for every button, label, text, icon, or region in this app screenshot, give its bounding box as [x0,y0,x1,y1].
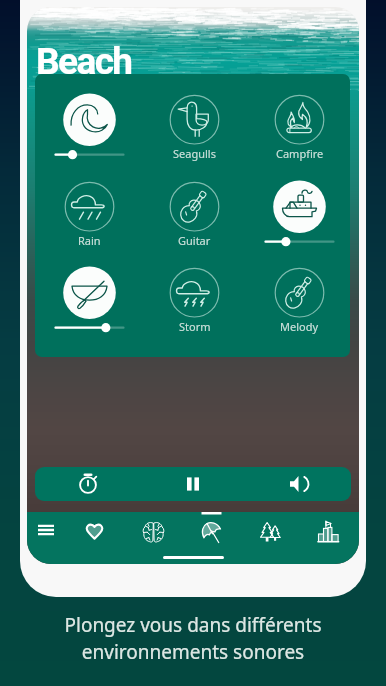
button[interactable]: Guitar [142,161,247,247]
staticText: Beach [36,40,132,83]
staticText: Guitar [178,233,211,248]
button[interactable] [37,247,142,333]
staticText: Rain [78,233,101,248]
button[interactable]: Volume [246,467,351,501]
button[interactable]: Rain [37,161,142,247]
button[interactable]: Forest [241,512,300,548]
button[interactable]: Campfire [247,74,350,160]
button[interactable]: Focus [124,512,183,548]
staticText: Seagulls [173,146,216,161]
staticText: Melody [280,319,319,334]
button[interactable] [37,74,142,160]
button[interactable]: Seagulls [142,74,247,160]
button[interactable]: Pause [140,467,246,501]
button[interactable]: Melody [247,247,350,333]
button[interactable]: Storm [142,247,247,333]
staticText: Storm [179,319,211,334]
button[interactable]: Menu [29,513,63,547]
staticText: Campfire [276,146,324,161]
button[interactable]: Favorites [65,512,124,548]
staticText: Plongez vous dans différents environneme… [0,612,386,665]
button[interactable]: City [299,512,358,548]
button[interactable] [247,161,350,247]
button[interactable]: Timer [35,467,140,501]
button[interactable]: Beach [182,512,241,548]
